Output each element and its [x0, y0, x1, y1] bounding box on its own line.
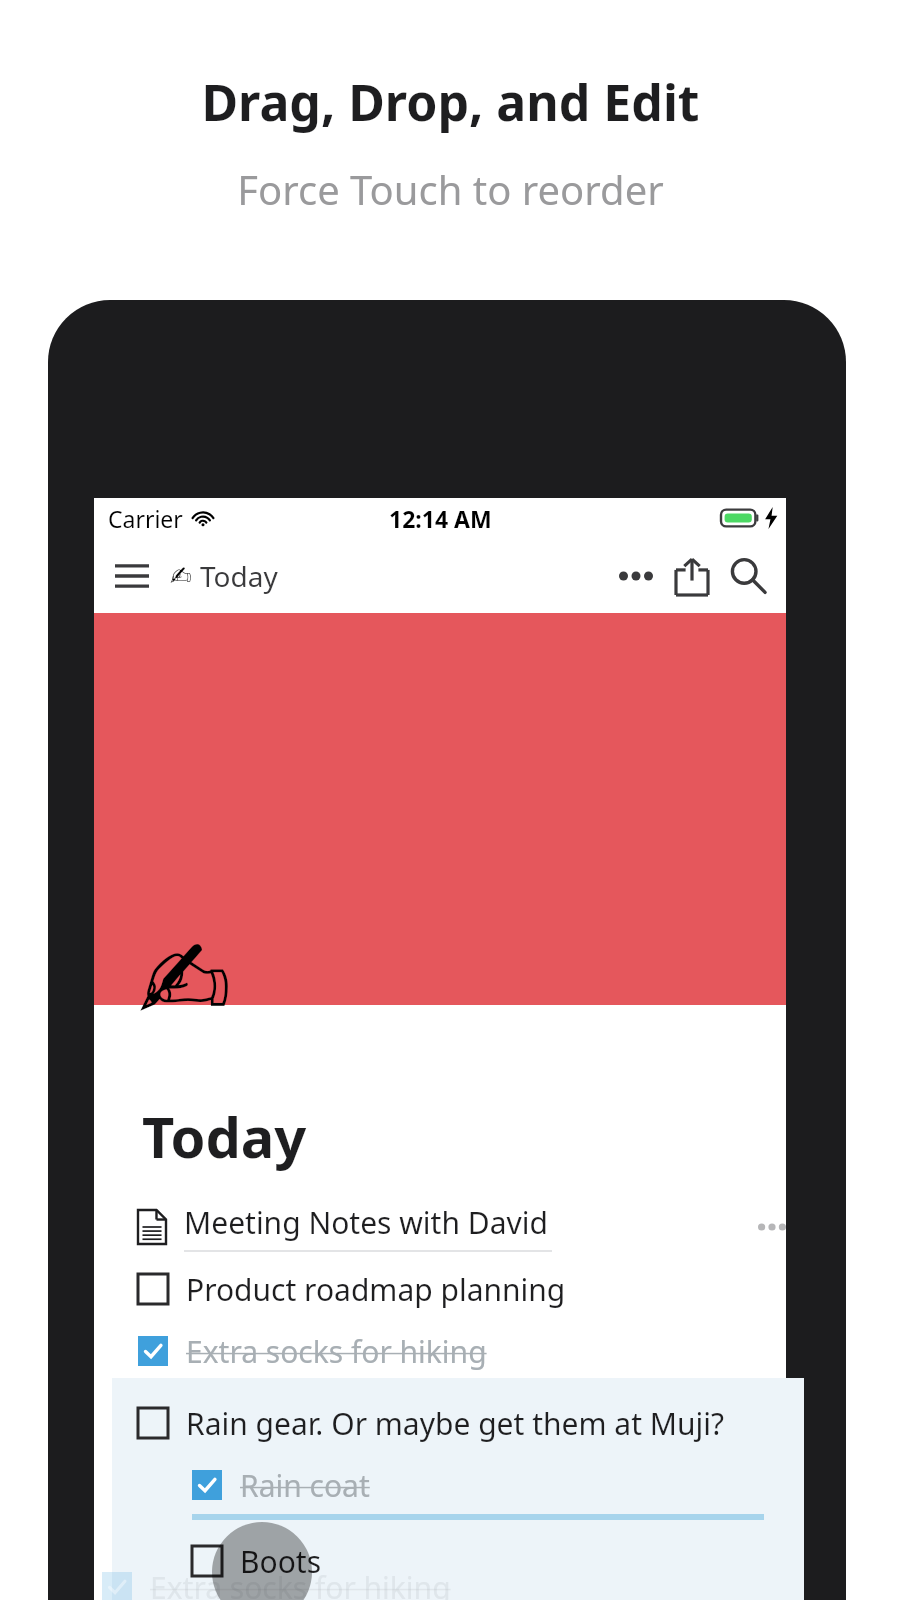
staticText: Product roadmap planning: [186, 1269, 566, 1310]
staticText: 12:14 AM: [389, 503, 492, 534]
staticText: Today: [142, 1098, 307, 1174]
staticText: Force Touch to reorder: [237, 162, 664, 216]
button[interactable]: Share: [664, 548, 720, 604]
button[interactable]: Extra socks for hiking: [138, 1322, 830, 1380]
button[interactable]: Menu: [106, 550, 158, 602]
button[interactable]: Meeting Notes with David: [138, 1198, 830, 1256]
button[interactable]: ✍️: [170, 557, 278, 595]
staticText: Today: [200, 557, 278, 595]
staticText: ✍️: [138, 916, 232, 1046]
button[interactable]: Rain coat: [192, 1456, 884, 1514]
staticText: Extra socks for hiking: [186, 1331, 487, 1372]
staticText: Boots: [240, 1541, 321, 1582]
staticText: Rain gear. Or maybe get them at Muji?: [186, 1403, 725, 1444]
button[interactable]: Rain gear. Or maybe get them at Muji?: [138, 1394, 830, 1452]
staticText: ✍️: [170, 561, 192, 591]
staticText: Drag, Drop, and Edit: [201, 68, 700, 136]
button[interactable]: Search: [720, 548, 776, 604]
button[interactable]: Boots: [192, 1532, 884, 1590]
staticText: Rain coat: [240, 1465, 370, 1506]
staticText: Carrier: [108, 503, 183, 534]
staticText: Extra socks for hiking: [150, 1567, 451, 1600]
staticText: Meeting Notes with David: [184, 1202, 548, 1243]
button[interactable]: More options: [608, 548, 664, 604]
button[interactable]: Product roadmap planning: [138, 1260, 830, 1318]
button[interactable]: Note actions: [750, 1205, 794, 1249]
